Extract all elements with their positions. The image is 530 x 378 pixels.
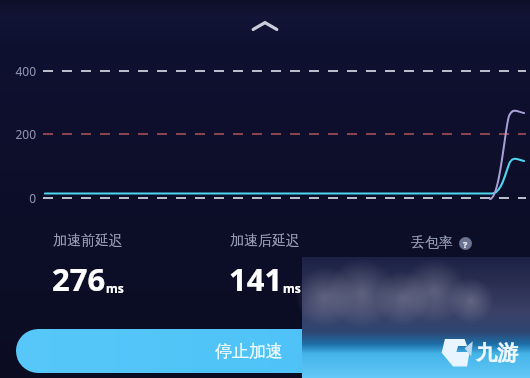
button[interactable]: Collapse bbox=[241, 10, 289, 42]
staticText: 276 bbox=[52, 258, 106, 300]
button[interactable]: 停止加速 bbox=[16, 329, 514, 373]
staticText: 400 bbox=[15, 63, 36, 79]
staticText: 0 bbox=[29, 190, 36, 206]
staticText: 200 bbox=[15, 126, 36, 142]
staticText: ms bbox=[106, 280, 124, 296]
staticText: 丢包率 bbox=[411, 234, 453, 252]
staticText: 九游 bbox=[476, 340, 518, 366]
button[interactable]: 丢包率 bbox=[411, 234, 472, 252]
staticText: ? bbox=[463, 238, 468, 250]
staticText: 141 bbox=[229, 258, 283, 300]
staticText: 加速后延迟 bbox=[230, 232, 300, 250]
staticText: ms bbox=[283, 280, 301, 296]
staticText: 加速前延迟 bbox=[53, 232, 123, 250]
other: Help bbox=[459, 237, 472, 250]
staticText: 停止加速 bbox=[215, 341, 283, 362]
